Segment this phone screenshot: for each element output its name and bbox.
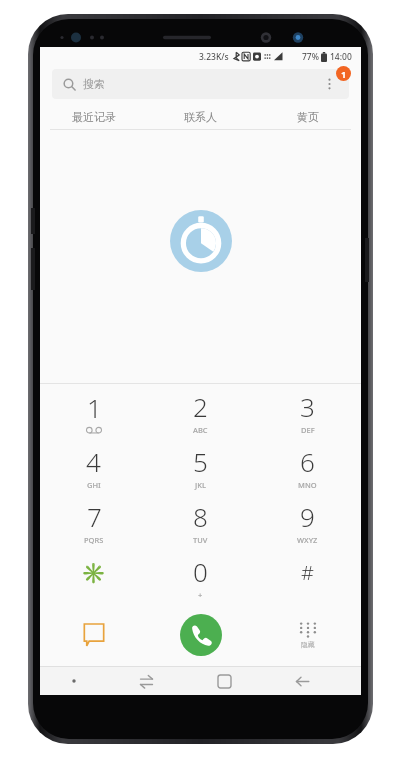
- button[interactable]: 1: [40, 384, 147, 439]
- button[interactable]: ✳: [40, 549, 147, 604]
- staticText: ABC: [193, 425, 208, 435]
- button[interactable]: 9: [254, 494, 361, 549]
- staticText: 9: [300, 499, 315, 534]
- button[interactable]: Back: [263, 667, 341, 695]
- button[interactable]: Switch: [107, 667, 185, 695]
- button[interactable]: Call: [180, 614, 222, 656]
- button[interactable]: 2: [147, 384, 254, 439]
- staticText: MNO: [298, 480, 317, 490]
- staticText: 3: [300, 389, 315, 424]
- staticText: ✳: [81, 561, 106, 584]
- staticText: GHI: [87, 480, 101, 490]
- staticText: 14:00: [330, 51, 352, 63]
- button[interactable]: Send message: [40, 604, 147, 666]
- staticText: 1: [87, 390, 102, 425]
- staticText: #: [301, 559, 314, 586]
- staticText: 最近记录: [72, 110, 116, 124]
- staticText: JKL: [195, 480, 206, 490]
- staticText: 5: [193, 444, 208, 479]
- staticText: 联系人: [184, 110, 217, 124]
- button[interactable]: 7: [40, 494, 147, 549]
- button[interactable]: 8: [147, 494, 254, 549]
- staticText: 黄页: [297, 110, 319, 124]
- staticText: 6: [300, 444, 315, 479]
- staticText: +: [198, 590, 203, 600]
- button[interactable]: 6: [254, 439, 361, 494]
- other: Search: [63, 78, 76, 91]
- staticText: TUV: [193, 535, 208, 545]
- staticText: 0: [193, 554, 208, 589]
- button[interactable]: #: [254, 549, 361, 604]
- button[interactable]: 黄页: [254, 105, 361, 129]
- staticText: 3.23K/s: [199, 51, 229, 63]
- staticText: WXYZ: [297, 535, 318, 545]
- button[interactable]: More options: [320, 69, 338, 99]
- button[interactable]: Recents: [185, 667, 263, 695]
- button[interactable]: Hide keypad: [254, 604, 361, 666]
- button[interactable]: 3: [254, 384, 361, 439]
- staticText: 隐藏: [301, 640, 315, 649]
- staticText: 8: [193, 499, 208, 534]
- staticText: DEF: [301, 425, 315, 435]
- staticText: 4: [86, 444, 101, 479]
- button[interactable]: 最近记录: [40, 105, 147, 129]
- button[interactable]: 0: [147, 549, 254, 604]
- staticText: 搜索: [83, 77, 105, 91]
- staticText: PQRS: [84, 535, 104, 545]
- button[interactable]: 4: [40, 439, 147, 494]
- staticText: 2: [193, 389, 208, 424]
- staticText: 7: [87, 499, 102, 534]
- button[interactable]: Search: [52, 69, 349, 99]
- staticText: 77%: [302, 51, 319, 63]
- staticText: 1: [341, 68, 347, 80]
- button[interactable]: Indicator: [40, 667, 107, 695]
- button[interactable]: 联系人: [147, 105, 254, 129]
- button[interactable]: 5: [147, 439, 254, 494]
